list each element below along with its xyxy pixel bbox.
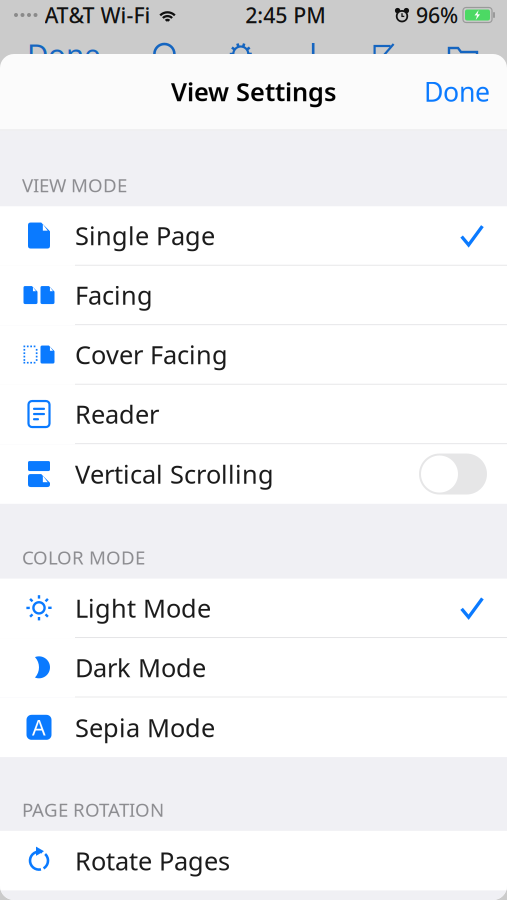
button[interactable]: Rotate Pages	[0, 831, 507, 890]
staticText: Cover Facing	[75, 338, 228, 371]
staticText: AT&T Wi-Fi	[44, 1, 150, 29]
button[interactable]: Facing	[0, 266, 507, 325]
staticText: 96%	[416, 1, 458, 29]
button[interactable]: Dark Mode	[0, 638, 507, 698]
staticText: Vertical Scrolling	[75, 457, 274, 491]
staticText: Sepia Mode	[75, 710, 215, 744]
staticText: Single Page	[75, 219, 215, 252]
staticText: PAGE ROTATION	[22, 797, 164, 822]
button[interactable]: A	[0, 698, 507, 757]
staticText: Done	[27, 34, 101, 73]
staticText: 2:45 PM	[245, 1, 326, 29]
staticText: COLOR MODE	[22, 545, 145, 570]
staticText: Dark Mode	[75, 650, 206, 684]
staticText: VIEW MODE	[22, 172, 127, 197]
button[interactable]: Vertical Scrolling	[0, 444, 507, 504]
button[interactable]: Done	[402, 60, 507, 123]
staticText: View Settings	[171, 75, 336, 108]
button[interactable]: Light Mode	[0, 579, 507, 638]
staticText: Light Mode	[75, 591, 211, 625]
button[interactable]: Reader	[0, 385, 507, 444]
button[interactable]: Cover Facing	[0, 325, 507, 385]
button[interactable]: Single Page	[0, 206, 507, 266]
staticText: Facing	[75, 278, 153, 312]
staticText: A	[32, 713, 46, 741]
staticText: Done	[424, 74, 490, 109]
staticText: Reader	[75, 397, 159, 431]
staticText: Rotate Pages	[75, 844, 230, 877]
